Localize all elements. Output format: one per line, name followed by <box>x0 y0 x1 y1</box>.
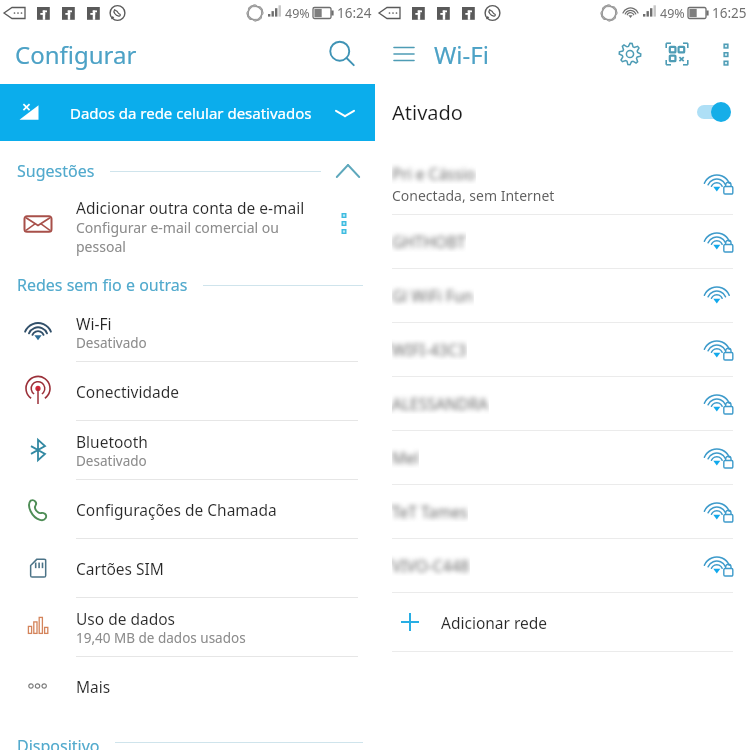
button[interactable]: Wi-Fi <box>0 303 375 361</box>
button[interactable]: Adicionar rede <box>375 593 750 651</box>
staticText: Wi-Fi <box>434 38 489 71</box>
staticText: 49% <box>660 5 685 22</box>
staticText: Dados da rede celular desativados <box>70 103 312 123</box>
button[interactable]: VIVO-C448 <box>375 539 750 592</box>
button[interactable]: Adicionar outra conta de e-mail <box>0 189 375 267</box>
staticText: Mais <box>76 676 111 697</box>
staticText: Adicionar outra conta de e-mail <box>76 197 305 218</box>
staticText: TeT Tames <box>392 501 468 522</box>
staticText: Desativado <box>76 334 147 352</box>
staticText: Conectada, sem Internet <box>392 186 555 205</box>
staticText: Desativado <box>76 452 147 470</box>
button[interactable]: WIFI-43C3 <box>375 323 750 376</box>
button[interactable]: Scan QR code <box>656 37 698 79</box>
staticText: GHTHOBT <box>392 231 466 252</box>
staticText: 49% <box>285 5 310 22</box>
staticText: Wi-Fi <box>76 313 112 334</box>
staticText: Gl WiFi Fun <box>392 285 474 306</box>
staticText: Redes sem fio e outras <box>17 274 188 296</box>
staticText: Conectividade <box>76 381 179 402</box>
button[interactable]: Mel <box>375 431 750 484</box>
button[interactable]: Conectividade <box>0 362 375 420</box>
staticText: WIFI-43C3 <box>392 339 467 360</box>
button[interactable]: More options <box>707 39 745 77</box>
staticText: Configurações de Chamada <box>76 499 277 520</box>
button[interactable]: Dados da rede celular desativados <box>0 84 375 141</box>
staticText: Ativado <box>392 99 463 126</box>
staticText: Uso de dados <box>76 608 176 629</box>
button[interactable]: Ativado <box>375 84 750 140</box>
button[interactable]: More options <box>313 189 375 267</box>
staticText: ALESSANDRA <box>392 393 489 414</box>
button[interactable]: Settings <box>609 37 651 79</box>
staticText: Mel <box>392 447 419 468</box>
staticText: VIVO-C448 <box>392 555 470 576</box>
button[interactable]: Uso de dados <box>0 598 375 656</box>
staticText: 19,40 MB de dados usados <box>76 629 246 647</box>
staticText: Adicionar rede <box>441 612 548 633</box>
staticText: 16:24 <box>337 4 372 22</box>
button[interactable]: Mais <box>0 657 375 715</box>
staticText: Configurar e-mail comercial ou pessoal <box>76 218 279 256</box>
button[interactable]: Search <box>321 37 363 79</box>
staticText: 16:25 <box>712 4 747 22</box>
staticText: Pri e Cássio <box>392 163 476 184</box>
button[interactable]: Collapse section <box>333 156 363 186</box>
button[interactable]: Bluetooth <box>0 421 375 479</box>
button[interactable]: Menu <box>385 39 423 77</box>
button[interactable]: TeT Tames <box>375 485 750 538</box>
button[interactable]: Configurações de Chamada <box>0 480 375 538</box>
staticText: Cartões SIM <box>76 558 164 579</box>
button[interactable]: Cartões SIM <box>0 539 375 597</box>
staticText: Configurar <box>15 38 137 71</box>
staticText: Dispositivo <box>17 735 100 750</box>
button[interactable]: ALESSANDRA <box>375 377 750 430</box>
button[interactable]: Gl WiFi Fun <box>375 269 750 322</box>
staticText: Bluetooth <box>76 431 148 452</box>
button[interactable]: Pri e Cássio <box>375 153 750 214</box>
staticText: Sugestões <box>17 160 95 182</box>
button[interactable]: GHTHOBT <box>375 215 750 268</box>
